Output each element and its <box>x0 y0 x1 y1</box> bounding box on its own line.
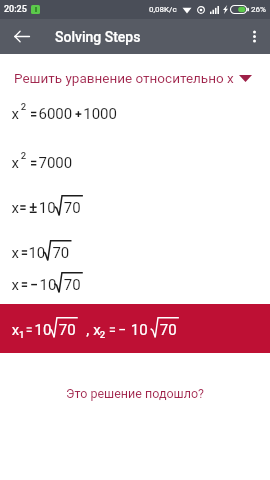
button[interactable]: Back <box>5 19 39 54</box>
button[interactable]: More options <box>238 19 270 54</box>
staticText: 26% <box>251 5 266 14</box>
staticText: Solving Steps <box>55 29 141 45</box>
staticText: Решить уравнение относительно x <box>14 70 234 86</box>
staticText: 0,08K/c <box>149 5 177 14</box>
staticText: 20:25 <box>4 4 27 15</box>
button[interactable]: Решить уравнение относительно x <box>0 68 270 88</box>
button[interactable]: Это решение подошло? <box>0 386 270 401</box>
